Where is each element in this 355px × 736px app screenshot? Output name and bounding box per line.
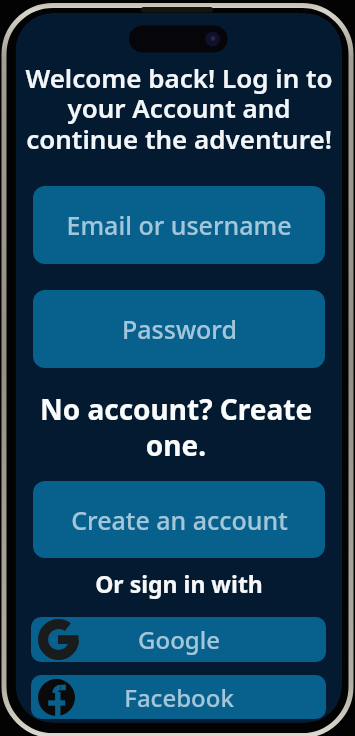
staticText: No account? Create one. (13, 390, 339, 464)
staticText: Google (138, 623, 220, 656)
button[interactable]: Facebook (31, 675, 326, 719)
button[interactable]: Create an account (33, 481, 325, 558)
staticText: Email or username (66, 208, 292, 242)
staticText: Facebook (124, 681, 234, 714)
button[interactable]: Password (33, 290, 325, 368)
staticText: Create an account (71, 503, 288, 537)
staticText: Or sign in with (16, 568, 342, 599)
button[interactable]: Email or username (33, 186, 325, 264)
button[interactable]: Google (31, 617, 326, 662)
staticText: Welcome back! Log in to your Account and… (16, 60, 342, 157)
staticText: Password (122, 312, 237, 346)
